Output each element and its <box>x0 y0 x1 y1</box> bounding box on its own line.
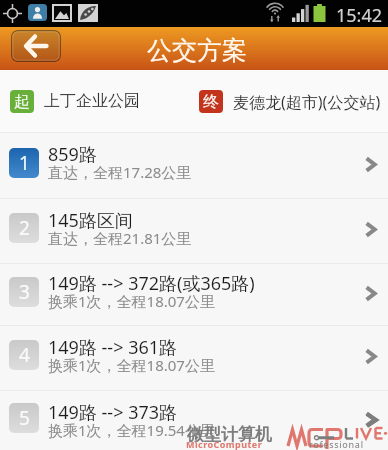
staticText: 5 <box>19 405 30 431</box>
other: Open route details <box>359 345 381 367</box>
button[interactable]: 5 <box>0 391 388 450</box>
staticText: 直达，全程21.81公里 <box>48 228 192 248</box>
button[interactable]: 4 <box>0 326 388 390</box>
staticText: rofessional <box>309 438 364 450</box>
staticText: 换乘1次，全程18.07公里 <box>48 355 215 375</box>
staticText: 换乘1次，全程19.54公里 <box>48 420 215 440</box>
other: Open route details <box>359 218 381 240</box>
staticText: 直达，全程17.28公里 <box>48 162 192 182</box>
staticText: 公交方案 <box>147 35 247 66</box>
button[interactable]: 1 <box>0 133 388 198</box>
staticText: 859路 <box>48 142 97 167</box>
staticText: 145路区间 <box>48 208 133 233</box>
staticText: 麦德龙(超市)(公交站) <box>233 91 381 113</box>
staticText: 起 <box>14 92 30 112</box>
staticText: 1 <box>19 150 30 176</box>
staticText: 微型计算机 <box>187 424 272 445</box>
other: Open route details <box>359 408 381 430</box>
button[interactable]: 3 <box>0 264 388 325</box>
staticText: 换乘1次，全程18.07公里 <box>48 291 215 311</box>
button[interactable]: 2 <box>0 199 388 263</box>
button[interactable]: Back <box>11 30 61 62</box>
staticText: MicroComputer <box>186 438 263 450</box>
staticText: 2 <box>19 215 30 241</box>
staticText: 上丁企业公园 <box>44 91 140 111</box>
other: Open route details <box>359 153 381 175</box>
staticText: 149路 --> 372路(或365路) <box>48 271 255 296</box>
staticText: 3 <box>19 279 30 305</box>
staticText: 149路 --> 361路 <box>48 335 178 360</box>
staticText: 终 <box>203 92 219 112</box>
staticText: 149路 --> 373路 <box>48 400 178 425</box>
other: Open route details <box>359 282 381 304</box>
staticText: 15:42 <box>336 3 383 28</box>
staticText: 4 <box>19 342 30 368</box>
